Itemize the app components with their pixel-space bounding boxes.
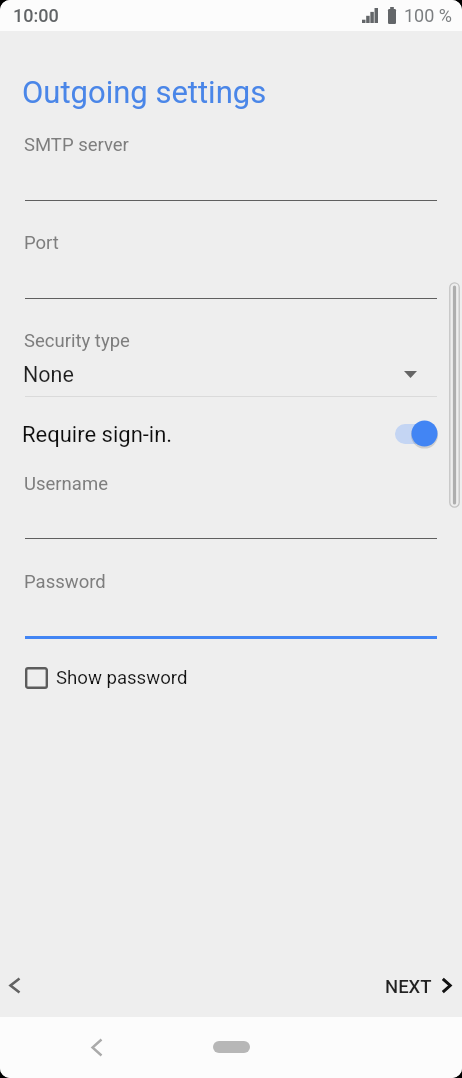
staticText: Security type <box>24 330 130 352</box>
button[interactable]: Back <box>0 962 38 1008</box>
staticText: Password <box>24 571 106 593</box>
button[interactable]: Require sign-in. <box>0 411 462 456</box>
staticText: 10:00 <box>13 5 59 26</box>
staticText: 100 % <box>404 5 452 26</box>
staticText: Show password <box>56 667 188 689</box>
staticText: SMTP server <box>24 134 129 156</box>
staticText: NEXT <box>385 976 432 998</box>
staticText: Port <box>24 232 59 254</box>
button[interactable]: Show password <box>19 663 198 693</box>
staticText: Require sign-in. <box>22 422 173 448</box>
button[interactable]: Back <box>75 1025 119 1069</box>
button[interactable]: NEXT <box>378 963 459 1007</box>
button[interactable]: Home <box>199 1027 263 1067</box>
staticText: None <box>23 362 74 387</box>
staticText: Username <box>24 473 108 495</box>
staticText: Outgoing settings <box>22 74 267 110</box>
button[interactable]: None <box>0 360 462 394</box>
